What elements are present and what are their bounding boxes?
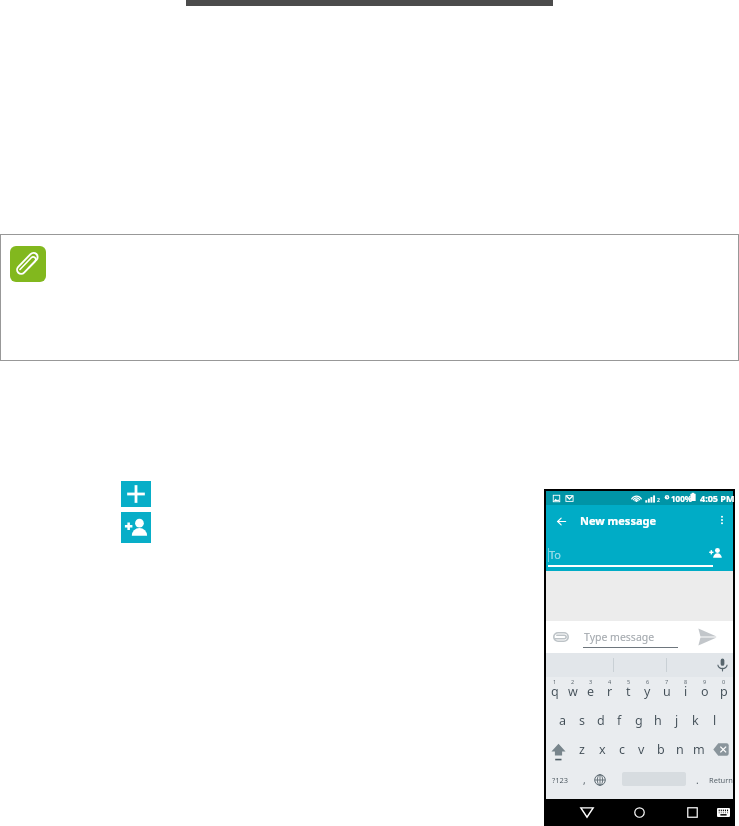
button[interactable]: New message bbox=[121, 481, 151, 507]
staticText: 2 bbox=[571, 678, 575, 685]
staticText: z bbox=[579, 741, 585, 758]
button[interactable]: a bbox=[554, 706, 572, 735]
button[interactable]: Home bbox=[631, 804, 648, 820]
button[interactable]: c bbox=[612, 735, 632, 764]
staticText: o bbox=[701, 683, 709, 700]
staticText: h bbox=[654, 712, 662, 729]
staticText: c bbox=[619, 741, 626, 758]
button[interactable]: , bbox=[574, 767, 594, 792]
button[interactable]: Recents bbox=[684, 804, 701, 820]
staticText: r bbox=[607, 683, 613, 700]
staticText: v bbox=[638, 741, 645, 758]
button[interactable]: Add contact bbox=[121, 512, 151, 543]
button[interactable]: x bbox=[592, 735, 612, 764]
button[interactable]: 8 bbox=[676, 677, 695, 706]
button[interactable]: d bbox=[591, 706, 610, 735]
staticText: 2 bbox=[657, 497, 660, 504]
staticText: 8 bbox=[684, 678, 688, 685]
button[interactable]: g bbox=[629, 706, 648, 735]
button[interactable]: z bbox=[572, 735, 592, 764]
button[interactable]: . bbox=[688, 767, 706, 792]
button[interactable]: b bbox=[651, 735, 670, 764]
button[interactable]: s bbox=[572, 706, 591, 735]
staticText: q bbox=[551, 683, 559, 700]
staticText: k bbox=[692, 712, 699, 729]
staticText: a bbox=[559, 712, 567, 729]
button[interactable]: Back bbox=[550, 510, 572, 532]
staticText: i bbox=[684, 683, 688, 700]
staticText: 6 bbox=[646, 678, 650, 685]
button[interactable]: l bbox=[705, 706, 724, 735]
staticText: m bbox=[693, 741, 705, 758]
staticText: n bbox=[676, 741, 684, 758]
staticText: 100% bbox=[671, 493, 692, 504]
staticText: Type message bbox=[584, 630, 655, 644]
staticText: y bbox=[644, 683, 651, 700]
staticText: 1 bbox=[553, 678, 557, 685]
button[interactable]: ?123 bbox=[547, 767, 573, 792]
button[interactable]: 4 bbox=[600, 677, 619, 706]
staticText: u bbox=[663, 683, 671, 700]
button[interactable]: 5 bbox=[619, 677, 638, 706]
button[interactable]: Shift bbox=[546, 739, 570, 764]
staticText: j bbox=[675, 712, 679, 729]
button[interactable]: m bbox=[689, 735, 708, 764]
button[interactable]: Keyboard bbox=[715, 804, 731, 820]
staticText: 5 bbox=[627, 678, 631, 685]
staticText: p bbox=[720, 683, 728, 700]
staticText: f bbox=[617, 712, 622, 729]
staticText: d bbox=[597, 712, 605, 729]
button[interactable]: k bbox=[686, 706, 705, 735]
button[interactable]: Language bbox=[589, 767, 611, 792]
staticText: New message bbox=[580, 513, 657, 528]
button[interactable]: Space bbox=[622, 766, 686, 792]
button[interactable]: 3 bbox=[582, 677, 600, 706]
button[interactable]: Backspace bbox=[709, 737, 733, 762]
staticText: 4:05 PM bbox=[700, 492, 735, 504]
staticText: Return bbox=[709, 775, 733, 785]
staticText: w bbox=[568, 683, 578, 700]
button[interactable]: v bbox=[632, 735, 651, 764]
button[interactable]: Add recipient bbox=[707, 544, 724, 562]
button[interactable]: More options bbox=[711, 509, 733, 531]
button[interactable]: Voice input bbox=[717, 658, 728, 672]
staticText: 7 bbox=[665, 678, 669, 685]
staticText: . bbox=[696, 773, 699, 787]
button[interactable]: Send bbox=[698, 628, 717, 646]
staticText: 0 bbox=[722, 678, 726, 685]
button[interactable]: Attach bbox=[553, 632, 569, 642]
button[interactable]: Back bbox=[578, 804, 595, 820]
button[interactable]: 9 bbox=[695, 677, 714, 706]
button[interactable]: n bbox=[670, 735, 689, 764]
button[interactable]: 7 bbox=[657, 677, 676, 706]
staticText: 4 bbox=[608, 678, 612, 685]
staticText: l bbox=[713, 712, 717, 729]
staticText: t bbox=[626, 683, 631, 700]
staticText: , bbox=[583, 773, 586, 787]
button[interactable]: h bbox=[648, 706, 667, 735]
button[interactable]: Return bbox=[706, 767, 735, 792]
button[interactable]: 0 bbox=[714, 677, 733, 706]
staticText: ?123 bbox=[552, 775, 569, 785]
staticText: 3 bbox=[589, 678, 593, 685]
staticText: x bbox=[599, 741, 606, 758]
button[interactable]: 1 bbox=[546, 677, 564, 706]
button[interactable]: f bbox=[610, 706, 629, 735]
button[interactable]: 2 bbox=[564, 677, 582, 706]
staticText: g bbox=[635, 712, 643, 729]
button[interactable]: j bbox=[667, 706, 686, 735]
staticText: b bbox=[657, 741, 665, 758]
staticText: e bbox=[587, 683, 595, 700]
button[interactable]: 6 bbox=[638, 677, 657, 706]
staticText: 9 bbox=[703, 678, 707, 685]
staticText: To bbox=[549, 547, 562, 562]
staticText: s bbox=[579, 712, 585, 729]
